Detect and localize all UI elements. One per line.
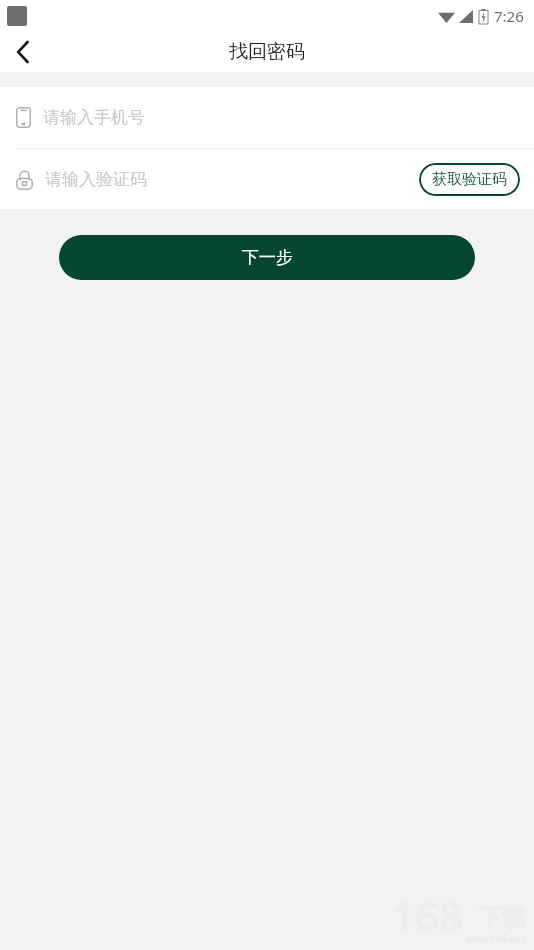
button[interactable]: 请输入验证码 [16, 169, 419, 190]
staticText: down.it168.com [466, 933, 526, 944]
staticText: 7:26 [494, 6, 524, 26]
button[interactable]: Back [0, 32, 46, 72]
button[interactable]: 请输入手机号 [0, 87, 534, 148]
staticText: 下一步 [242, 247, 293, 268]
button[interactable]: 获取验证码 [419, 163, 520, 196]
staticText: 请输入验证码 [45, 169, 147, 190]
staticText: 找回密码 [229, 40, 305, 64]
staticText: 请输入手机号 [43, 107, 145, 128]
staticText: 获取验证码 [432, 170, 507, 189]
button[interactable]: 下一步 [59, 235, 475, 280]
